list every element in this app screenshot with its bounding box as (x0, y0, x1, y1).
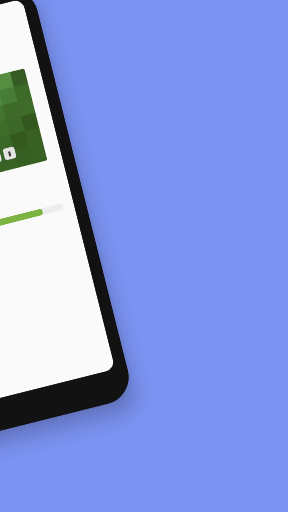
button[interactable]: Tag (0, 68, 47, 198)
other: Tag (2, 146, 17, 161)
other: Tag (0, 150, 2, 164)
